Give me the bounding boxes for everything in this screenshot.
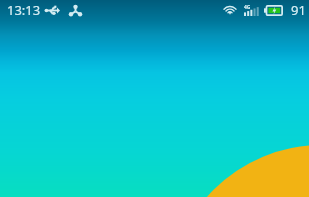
staticText: 4G (244, 4, 251, 11)
other: USB debugging (69, 5, 82, 16)
staticText: 13:13 (7, 1, 41, 19)
other: Battery charging, 91 percent (264, 5, 283, 16)
other: USB connected (45, 5, 60, 16)
staticText: 91 (291, 1, 306, 19)
other: Wi-Fi (223, 4, 237, 16)
other: 4G signal strength (244, 4, 259, 16)
